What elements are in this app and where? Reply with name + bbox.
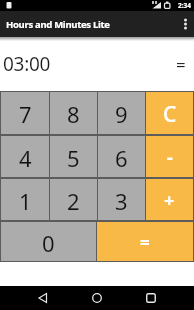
button[interactable]: 0 [1,222,96,261]
staticText: + [164,188,175,213]
staticText: 8 [67,99,80,129]
staticText: = [176,53,186,76]
staticText: 1 [19,186,32,216]
button[interactable]: 8 [50,92,97,134]
staticText: 2:34 [178,1,191,10]
staticText: = [140,231,150,254]
button[interactable] [31,286,55,310]
button[interactable]: C [146,92,193,134]
staticText: 03:00 [3,51,51,77]
staticText: 9 [115,99,128,129]
button[interactable] [139,286,163,310]
staticText: - [167,145,173,170]
button[interactable]: 6 [98,136,145,177]
button[interactable]: = [97,222,193,261]
staticText: 3 [115,186,128,216]
staticText: 4 [19,143,32,173]
button[interactable] [85,286,109,310]
staticText: 6 [115,143,128,173]
staticText: 0 [42,228,55,258]
button[interactable]: 2 [50,179,97,220]
button[interactable]: 3 [98,179,145,220]
staticText: 2 [67,186,80,216]
button[interactable]: 5 [50,136,97,177]
button[interactable]: 1 [1,179,49,220]
button[interactable] [176,11,194,37]
staticText: 5 [67,143,80,173]
button[interactable]: - [146,136,193,177]
button[interactable]: + [146,179,193,220]
button[interactable]: 7 [1,92,49,134]
staticText: Hours and Minutes Lite [6,18,110,31]
staticText: C [163,100,177,129]
staticText: 7 [19,99,32,129]
button[interactable]: 9 [98,92,145,134]
button[interactable]: 4 [1,136,49,177]
